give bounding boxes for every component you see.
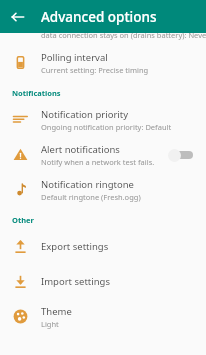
staticText: Notify when a network test fails.: [41, 157, 155, 167]
staticText: Notification ringtone: [41, 178, 134, 191]
button[interactable]: Notification ringtone: [0, 172, 206, 207]
button[interactable]: Polling interval: [0, 45, 206, 80]
button[interactable]: Import settings: [0, 264, 206, 299]
staticText: Import settings: [41, 275, 110, 288]
staticText: Export settings: [41, 240, 109, 253]
staticText: Current setting: Precise timing: [41, 65, 149, 75]
button[interactable]: Alert notifications: [0, 137, 206, 172]
staticText: data connection stays on (drains battery…: [41, 30, 206, 40]
staticText: Polling interval: [41, 51, 108, 64]
staticText: Other: [12, 215, 34, 225]
button[interactable]: Alert notifications toggle: [168, 147, 196, 163]
staticText: Light: [41, 319, 59, 329]
staticText: Notification priority: [41, 108, 129, 121]
button[interactable]: Notification priority: [0, 102, 206, 137]
staticText: Default ringtone (Fresh.ogg): [41, 192, 141, 202]
staticText: Ongoing notification priority: Default: [41, 122, 172, 132]
button[interactable]: Back: [7, 6, 29, 28]
staticText: Notifications: [12, 88, 61, 98]
button[interactable]: Export settings: [0, 229, 206, 264]
button[interactable]: data connection stays on (drains battery…: [0, 33, 206, 45]
button[interactable]: Theme: [0, 299, 206, 334]
staticText: Advanced options: [41, 8, 157, 26]
staticText: Theme: [41, 305, 72, 318]
staticText: Alert notifications: [41, 143, 120, 156]
